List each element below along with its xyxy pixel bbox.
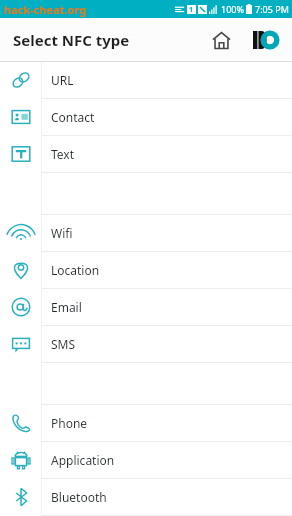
staticText: Location [51, 262, 100, 278]
staticText: Email [51, 299, 82, 315]
staticText: Bluetooth [51, 489, 107, 505]
button[interactable]: Bluetooth [0, 479, 292, 516]
button[interactable]: Phone [0, 405, 292, 442]
button[interactable]: Email [0, 289, 292, 326]
staticText: 7:05 PM [255, 3, 289, 15]
staticText: URL [51, 72, 74, 88]
staticText: 1 [189, 5, 194, 14]
staticText: Phone [51, 415, 88, 431]
button[interactable]: App logo [248, 22, 284, 58]
staticText: SMS [51, 336, 76, 352]
staticText: 100% [221, 3, 244, 15]
button[interactable]: URL [0, 62, 292, 99]
staticText: Text [51, 146, 75, 162]
button[interactable]: Contact [0, 99, 292, 136]
button[interactable]: Location [0, 252, 292, 289]
button[interactable]: Application [0, 442, 292, 479]
staticText: Contact [51, 109, 95, 125]
staticText: hack-cheat.org [4, 2, 87, 17]
staticText: Application [51, 452, 115, 468]
button[interactable]: Home [204, 23, 238, 57]
staticText: Wifi [51, 225, 73, 241]
button[interactable]: Wifi [0, 215, 292, 252]
button[interactable]: Text [0, 136, 292, 173]
staticText: Select NFC type [13, 30, 130, 50]
button[interactable]: SMS [0, 326, 292, 363]
